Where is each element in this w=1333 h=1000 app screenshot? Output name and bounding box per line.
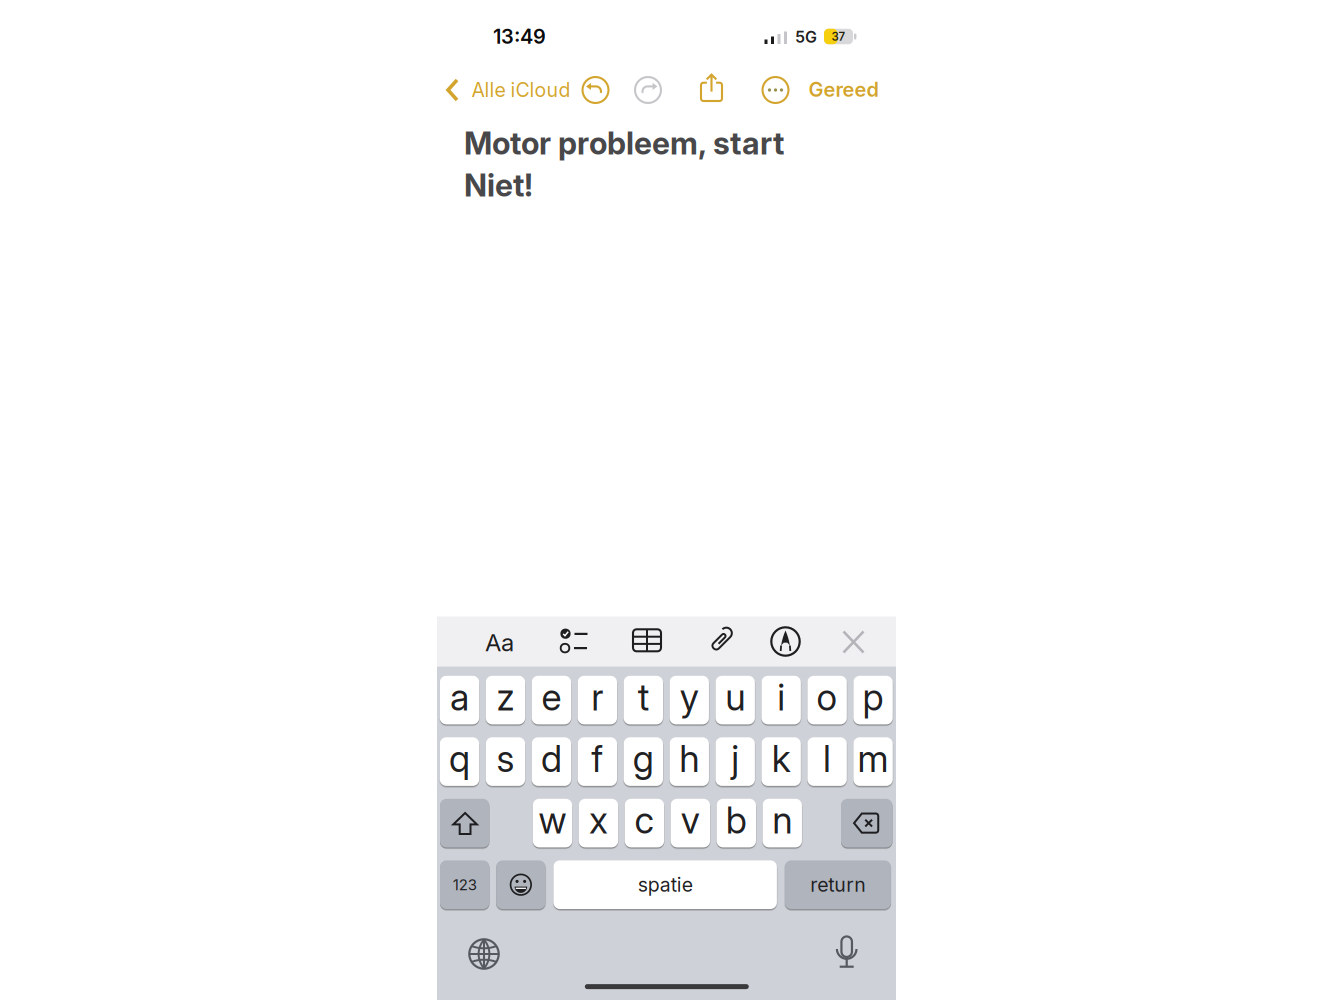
staticText: Gereed [808, 77, 878, 102]
staticText: g [633, 736, 654, 781]
button[interactable]: Format [477, 620, 521, 664]
button[interactable]: 123 [440, 860, 489, 909]
button[interactable]: q [440, 737, 479, 786]
button[interactable]: Table [624, 619, 668, 663]
button[interactable]: Share [693, 73, 729, 109]
button[interactable]: r [578, 676, 617, 724]
staticText: Motor probleem, start [464, 124, 784, 162]
staticText: v [681, 798, 700, 842]
button[interactable]: v [671, 799, 710, 847]
staticText: Aa [485, 628, 514, 657]
staticText: m [858, 736, 889, 781]
button[interactable]: Checklist [551, 619, 595, 663]
button[interactable]: a [440, 676, 479, 724]
button[interactable]: i [761, 676, 801, 724]
button[interactable]: t [624, 676, 663, 724]
button[interactable]: Markup [763, 619, 807, 663]
staticText: u [725, 675, 745, 719]
staticText: 13:49 [493, 24, 546, 49]
button[interactable]: Shift [440, 799, 489, 847]
staticText: l [823, 736, 831, 781]
staticText: a [450, 675, 469, 719]
button[interactable]: j [715, 737, 755, 786]
button[interactable]: Undo [577, 72, 613, 108]
staticText: Niet! [464, 166, 533, 204]
staticText: c [634, 798, 654, 842]
button[interactable]: Dismiss keyboard [831, 620, 875, 664]
staticText: r [591, 675, 603, 719]
button[interactable]: h [669, 737, 709, 786]
button[interactable]: s [486, 737, 525, 786]
button[interactable]: k [761, 737, 801, 786]
staticText: f [591, 736, 603, 781]
button[interactable]: b [717, 799, 756, 847]
button[interactable]: Emoji [496, 860, 545, 909]
staticText: n [772, 798, 792, 842]
button[interactable]: w [533, 799, 572, 847]
staticText: b [726, 798, 747, 842]
button[interactable]: f [578, 737, 617, 786]
staticText: s [496, 736, 514, 781]
staticText: e [541, 675, 561, 719]
button[interactable]: y [669, 676, 709, 724]
staticText: 5G [795, 27, 817, 47]
button[interactable]: x [579, 799, 618, 847]
staticText: return [810, 873, 865, 896]
staticText: k [772, 736, 791, 781]
staticText: p [863, 675, 884, 719]
button[interactable]: u [715, 676, 755, 724]
button[interactable]: Dictation [825, 930, 869, 974]
staticText: z [496, 675, 514, 719]
staticText: j [731, 736, 739, 781]
staticText: spatie [638, 873, 693, 896]
button[interactable]: o [807, 676, 847, 724]
button[interactable]: Attach [695, 620, 739, 664]
staticText: y [680, 675, 699, 719]
button[interactable]: l [807, 737, 847, 786]
button[interactable]: Alle iCloud [446, 72, 570, 108]
staticText: x [589, 798, 608, 842]
staticText: i [777, 675, 785, 719]
button[interactable]: n [762, 799, 802, 847]
button[interactable]: Next keyboard [462, 932, 506, 976]
staticText: t [638, 675, 649, 719]
button[interactable]: Gereed [808, 71, 878, 107]
button[interactable]: return [785, 860, 891, 909]
staticText: 123 [453, 876, 477, 894]
button[interactable]: Delete [841, 799, 892, 847]
button[interactable]: Redo [630, 72, 666, 108]
button[interactable]: z [486, 676, 525, 724]
staticText: w [538, 798, 566, 842]
staticText: d [541, 736, 562, 781]
button[interactable]: c [625, 799, 664, 847]
button[interactable]: e [532, 676, 571, 724]
staticText: o [817, 675, 838, 719]
button[interactable]: m [853, 737, 893, 786]
button[interactable]: p [853, 676, 893, 724]
staticText: q [449, 736, 470, 781]
button[interactable]: More [757, 72, 793, 108]
button[interactable]: spatie [553, 860, 777, 909]
button[interactable]: g [624, 737, 663, 786]
staticText: Alle iCloud [471, 78, 570, 102]
button[interactable]: d [532, 737, 571, 786]
staticText: 37 [831, 29, 845, 43]
staticText: h [679, 736, 699, 781]
